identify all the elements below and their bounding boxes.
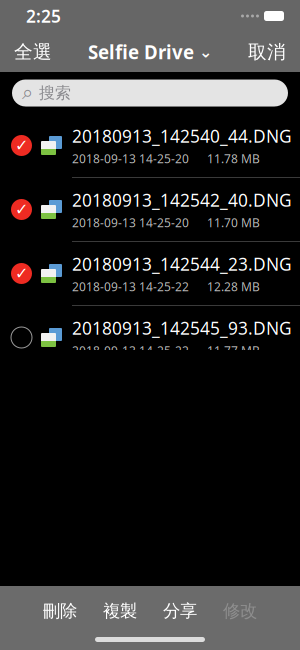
staticText: 2:25 (26, 4, 61, 27)
staticText: 11.70 MB (207, 214, 260, 230)
staticText: ✓ (15, 136, 28, 155)
staticText: 20180913_142545_93.DNG (72, 316, 292, 339)
staticText: 20180913_142542_40.DNG (72, 188, 292, 211)
staticText: 20180913_142544_23.DNG (72, 252, 292, 275)
staticText: 修改 (223, 600, 257, 622)
staticText: 2018-09-13 14-25-22 (72, 278, 189, 294)
staticText: 全選 (14, 40, 52, 63)
button[interactable]: 取消 (234, 32, 300, 71)
staticText: ⌄ (199, 43, 212, 61)
staticText: 11.78 MB (207, 150, 260, 166)
button[interactable]: 全選 (0, 32, 66, 71)
staticText: 搜索 (39, 83, 71, 103)
staticText: 複製 (103, 600, 137, 622)
button[interactable]: ✓ (0, 242, 300, 306)
staticText: ⌕ (22, 83, 33, 103)
button[interactable]: 複製 (90, 596, 150, 626)
staticText: 2018-09-13 14-25-20 (72, 214, 189, 230)
staticText: 刪除 (43, 600, 77, 622)
staticText: 11.77 MB (207, 342, 260, 358)
staticText: 2018-09-13 14-25-22 (72, 342, 189, 358)
staticText: ✓ (15, 200, 28, 219)
button[interactable]: 20180913_142545_93.DNG (0, 306, 300, 370)
staticText: 12.28 MB (207, 278, 260, 294)
button[interactable]: ✓ (0, 114, 300, 178)
staticText: 20180913_142540_44.DNG (72, 124, 292, 147)
staticText: 分享 (163, 600, 197, 622)
button[interactable]: ⌕ (12, 79, 288, 106)
button[interactable]: 修改 (210, 596, 270, 626)
button[interactable]: Selfie Drive (80, 34, 220, 70)
staticText: Selfie Drive (88, 40, 194, 64)
staticText: 取消 (248, 40, 286, 63)
staticText: ✓ (15, 264, 28, 283)
button[interactable]: 分享 (150, 596, 210, 626)
button[interactable]: 刪除 (30, 596, 90, 626)
staticText: 2018-09-13 14-25-20 (72, 150, 189, 166)
button[interactable]: ✓ (0, 178, 300, 242)
